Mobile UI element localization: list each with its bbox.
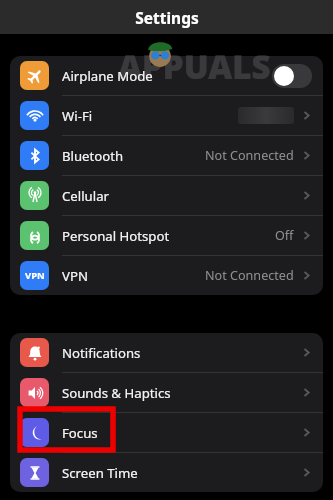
- button[interactable]: Airplane Mode: [10, 56, 323, 95]
- staticText: Screen Time: [62, 464, 138, 482]
- button[interactable]: Wi-Fi: [10, 96, 323, 135]
- button[interactable]: VPN: [10, 256, 323, 295]
- staticText: Settings: [135, 7, 199, 28]
- other: Airplane Mode toggle: [272, 64, 312, 88]
- staticText: Personal Hotspot: [62, 227, 170, 245]
- staticText: Off: [275, 227, 294, 244]
- button[interactable]: Notifications: [10, 333, 323, 372]
- button[interactable]: Bluetooth: [10, 136, 323, 175]
- staticText: Wi-Fi: [62, 107, 93, 125]
- staticText: Not Connected: [205, 267, 294, 284]
- staticText: Bluetooth: [62, 147, 124, 165]
- staticText: Focus: [62, 424, 98, 442]
- staticText: VPN: [62, 267, 88, 285]
- staticText: Notifications: [62, 344, 141, 362]
- button[interactable]: Personal Hotspot: [10, 216, 323, 255]
- staticText: Not Connected: [205, 147, 294, 164]
- staticText: Sounds & Haptics: [62, 384, 171, 402]
- button[interactable]: Focus: [10, 413, 323, 452]
- staticText: APPUALS: [118, 44, 271, 89]
- button[interactable]: Sounds & Haptics: [10, 373, 323, 412]
- staticText: Cellular: [62, 187, 109, 205]
- button[interactable]: Screen Time: [10, 453, 323, 492]
- staticText: Airplane Mode: [62, 67, 153, 85]
- staticText: VPN: [25, 269, 45, 282]
- button[interactable]: Cellular: [10, 176, 323, 215]
